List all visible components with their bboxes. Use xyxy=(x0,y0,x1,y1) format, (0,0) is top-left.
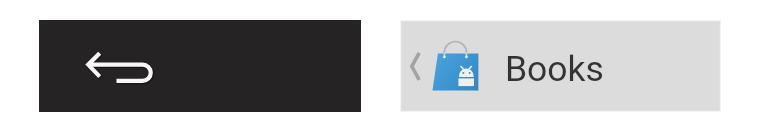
staticText: Books xyxy=(505,48,604,90)
button[interactable]: Navigate up xyxy=(400,20,495,112)
button[interactable]: Back xyxy=(39,20,361,112)
